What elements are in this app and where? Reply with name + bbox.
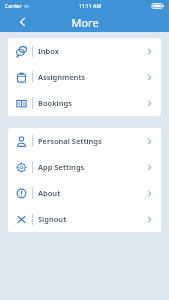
staticText: Bookings [38,98,146,108]
button[interactable]: Assignments [8,64,161,90]
button[interactable]: Signout [8,206,161,232]
staticText: Assignments [38,72,146,82]
staticText: About [38,188,146,198]
staticText: 11:11 AM [79,3,101,10]
staticText: Signout [38,214,146,224]
button[interactable]: Bookings [8,90,161,116]
button[interactable]: Back [14,13,32,31]
button[interactable]: Personal Settings [8,128,161,154]
staticText: More [71,15,99,30]
staticText: Inbox [38,46,146,56]
button[interactable]: Inbox [8,38,161,64]
staticText: App Settings [38,162,146,172]
button[interactable]: About [8,180,161,206]
staticText: Personal Settings [38,136,146,146]
button[interactable]: App Settings [8,154,161,180]
staticText: Carrier [5,3,22,10]
